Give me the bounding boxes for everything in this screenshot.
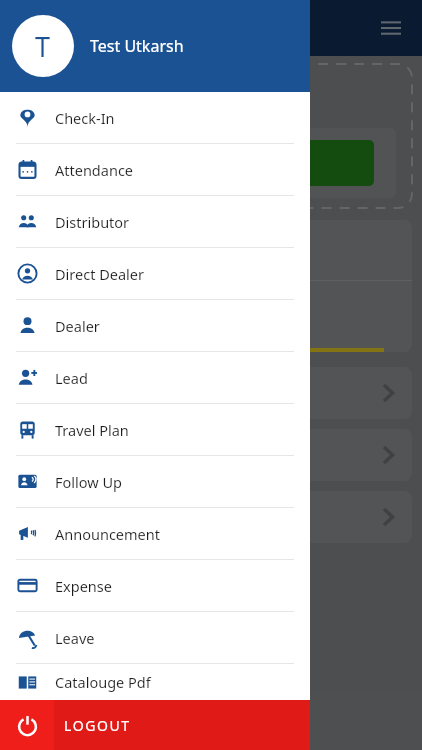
- button[interactable]: Check In Work Time: [48, 140, 374, 186]
- staticText: Distributor: [55, 212, 130, 232]
- button[interactable]: Leave: [0, 612, 310, 663]
- staticText: Dealer: [55, 316, 100, 336]
- staticText: Lead: [55, 368, 88, 388]
- staticText: Expense: [55, 576, 112, 596]
- button[interactable]: Follow Up: [0, 456, 310, 507]
- staticText: Test Utkarsh: [90, 35, 184, 57]
- staticText: Leave: [55, 628, 95, 648]
- button[interactable]: Open navigation menu: [374, 11, 408, 45]
- button[interactable]: Distributor: [0, 196, 310, 247]
- staticText: T: [35, 28, 51, 65]
- staticText: Travel Plan: [55, 420, 129, 440]
- button[interactable]: Announcement: [0, 508, 310, 559]
- button[interactable]: Lead: [0, 352, 310, 403]
- button[interactable]: LOGOUT: [0, 700, 310, 750]
- staticText: Follow Up: [55, 472, 122, 492]
- staticText: Direct Dealer: [55, 264, 144, 284]
- button[interactable]: Catalouge Pdf: [0, 664, 310, 700]
- button[interactable]: Attendance: [0, 144, 310, 195]
- button[interactable]: [10, 367, 412, 419]
- staticText: LOGOUT: [64, 716, 131, 735]
- button[interactable]: Dealer: [0, 300, 310, 351]
- staticText: Check-In: [55, 108, 115, 128]
- staticText: Attendance: [55, 160, 134, 180]
- button[interactable]: [10, 429, 412, 481]
- staticText: Catalouge Pdf: [55, 672, 151, 692]
- staticText: Announcement: [55, 524, 160, 544]
- button[interactable]: Travel Plan: [0, 404, 310, 455]
- button[interactable]: Direct Dealer: [0, 248, 310, 299]
- button[interactable]: Expense: [0, 560, 310, 611]
- button[interactable]: Check-In: [0, 92, 310, 143]
- staticText: 0: [207, 294, 216, 313]
- button[interactable]: [10, 491, 412, 543]
